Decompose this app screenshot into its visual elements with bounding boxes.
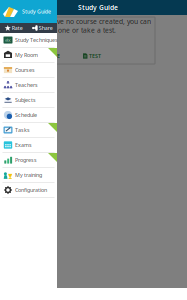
button[interactable]: Subjects <box>0 93 57 108</box>
button[interactable]: CREATE <box>36 51 66 61</box>
staticText: My Room <box>15 51 38 59</box>
staticText: Rate <box>12 24 23 32</box>
button[interactable]: Courses <box>0 63 57 78</box>
staticText: Study Guide <box>78 3 118 12</box>
button[interactable]: TEST <box>83 51 105 61</box>
staticText: Schedule <box>15 111 37 119</box>
staticText: Exams <box>15 141 32 149</box>
staticText: Courses <box>15 66 35 74</box>
button[interactable]: Teachers <box>0 78 57 93</box>
staticText: You have no course created, you can crea… <box>36 17 151 35</box>
button[interactable]: Configuration <box>0 183 57 198</box>
button[interactable]: My Room <box>0 48 57 63</box>
staticText: Tasks <box>15 126 30 134</box>
button[interactable]: Exams <box>0 138 57 153</box>
staticText: TEST <box>89 52 101 60</box>
button[interactable]: abc <box>0 33 57 48</box>
staticText: CREATE <box>42 52 60 60</box>
button[interactable]: Tasks <box>0 123 57 138</box>
button[interactable]: Schedule <box>0 108 57 123</box>
staticText: Teachers <box>15 81 38 89</box>
button[interactable]: Progress <box>0 153 57 168</box>
staticText: Configuration <box>15 186 47 194</box>
button[interactable]: Rate <box>0 23 28 33</box>
staticText: Subjects <box>15 96 36 104</box>
button[interactable]: Share <box>28 23 57 33</box>
staticText: Study Guide <box>22 8 51 15</box>
staticText: Share <box>39 24 53 32</box>
staticText: abc <box>5 37 11 43</box>
staticText: Study Techniques <box>15 36 58 44</box>
staticText: My training <box>15 171 42 179</box>
button[interactable]: My training <box>0 168 57 183</box>
staticText: Progress <box>15 156 37 164</box>
